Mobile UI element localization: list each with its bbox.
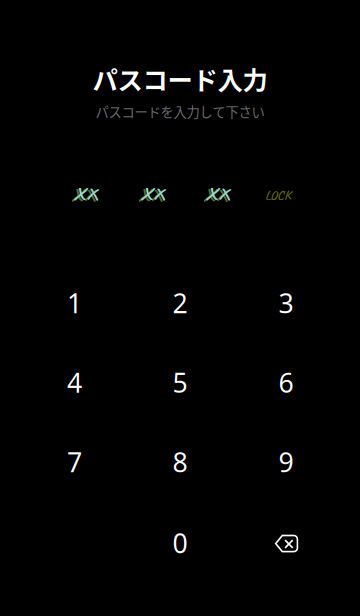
button[interactable]: 3 [234, 264, 338, 342]
staticText: 4 [67, 364, 82, 401]
staticText: パスコード入力 [92, 60, 267, 97]
button[interactable]: 4 [22, 343, 126, 421]
staticText: 6 [278, 364, 293, 401]
staticText: パスコードを入力して下さい [95, 102, 264, 121]
staticText: XX [73, 180, 97, 208]
staticText: 3 [278, 285, 293, 321]
staticText: XX [140, 180, 164, 208]
button[interactable]: 2 [128, 264, 232, 342]
button[interactable]: 7 [22, 423, 126, 501]
staticText: XX [205, 180, 229, 208]
button[interactable]: 8 [128, 423, 232, 501]
button[interactable]: 6 [234, 343, 338, 421]
staticText: XX [203, 181, 227, 209]
staticText: 7 [67, 444, 82, 480]
staticText: 1 [67, 285, 82, 321]
staticText: 2 [172, 285, 187, 321]
button[interactable]: 5 [128, 343, 232, 421]
button[interactable]: 0 [128, 504, 232, 582]
button[interactable]: 9 [234, 423, 338, 501]
button[interactable]: Delete [235, 504, 339, 582]
staticText: XX [71, 181, 95, 209]
button[interactable]: 1 [22, 264, 126, 342]
staticText: 8 [172, 444, 187, 480]
staticText: LOCK [265, 187, 291, 203]
staticText: XX [138, 181, 162, 209]
staticText: 5 [172, 364, 187, 401]
staticText: 9 [278, 444, 293, 480]
staticText: 0 [172, 525, 187, 561]
